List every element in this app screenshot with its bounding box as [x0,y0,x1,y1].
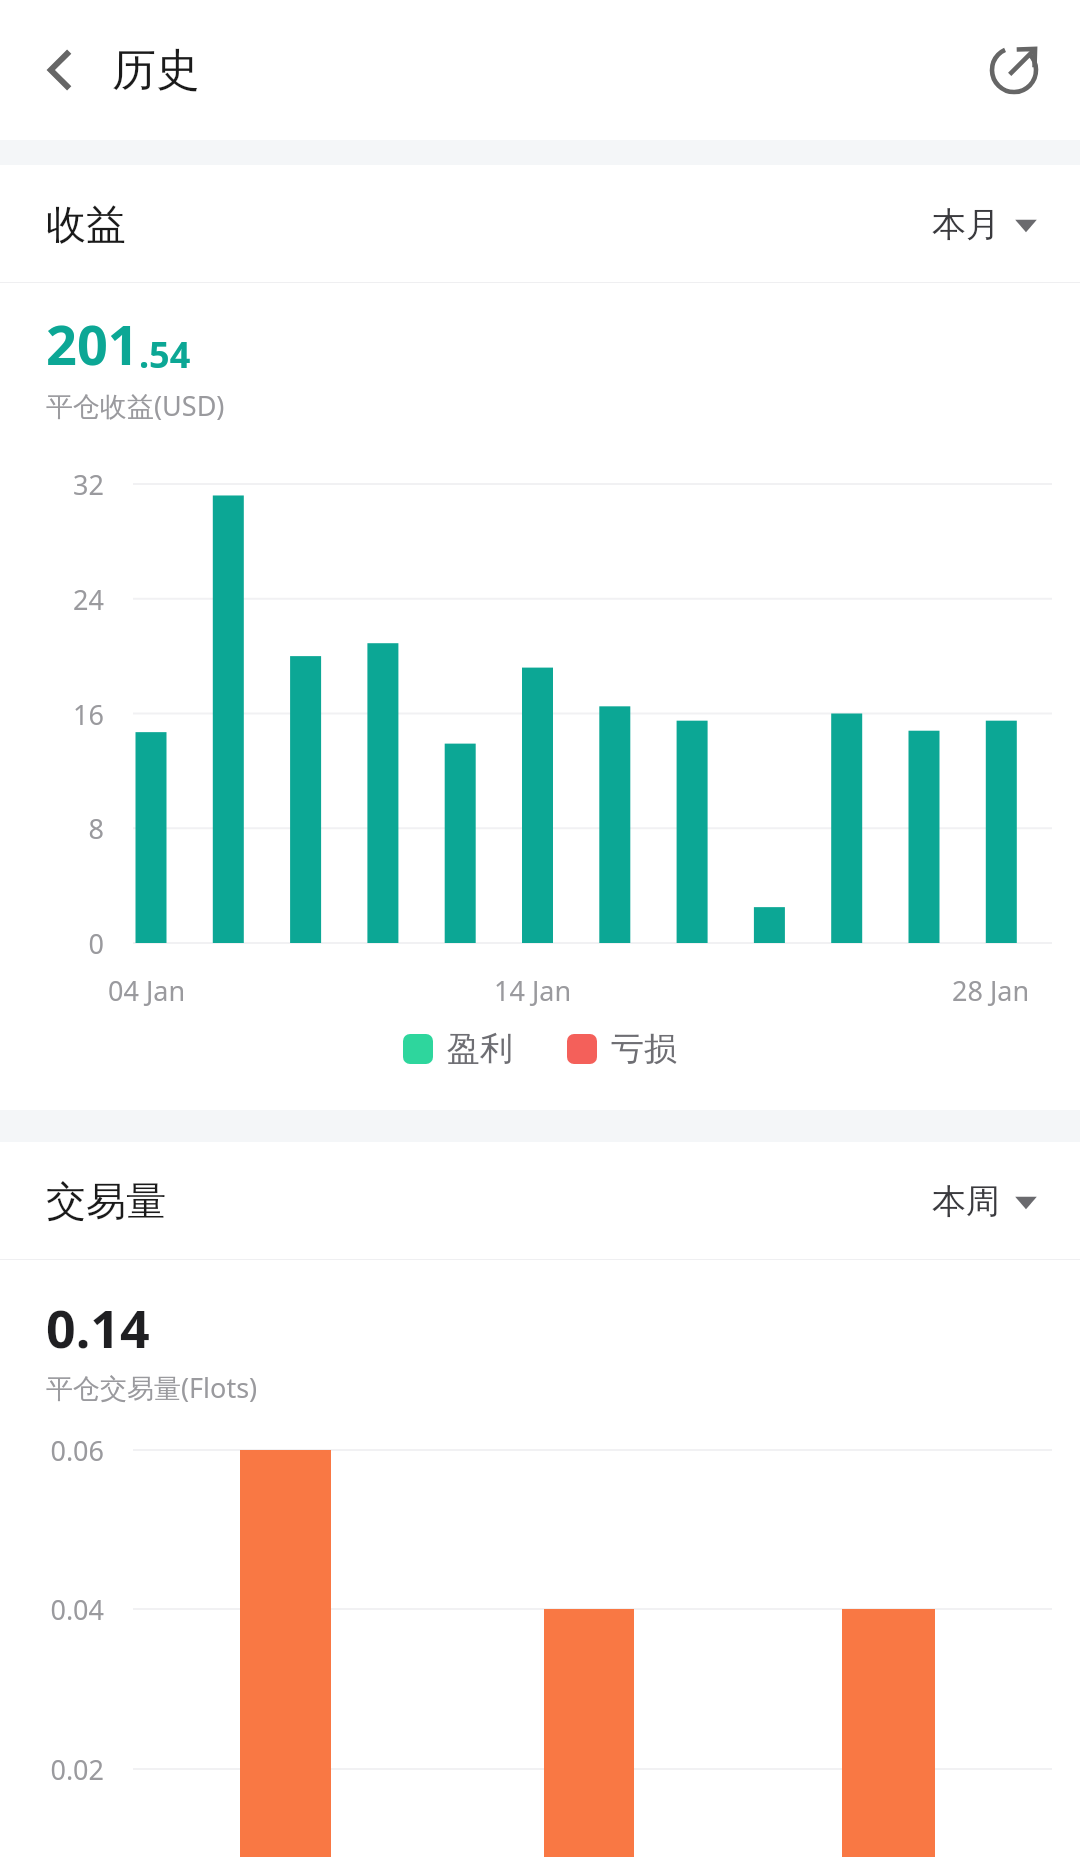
staticText: 历史 [112,43,200,98]
staticText: 8 [8,810,104,847]
staticText: 亏损 [611,1028,677,1070]
staticText: 本周 [932,1180,1000,1223]
staticText: 0.02 [8,1751,104,1788]
staticText: 16 [8,696,104,733]
staticText: 收益 [46,199,126,249]
staticText: 0.06 [8,1432,104,1469]
staticText: 14 Jan [494,972,572,1009]
staticText: 0.14 [46,1292,150,1363]
staticText: 盈利 [447,1028,513,1070]
staticText: 201 [46,307,139,381]
staticText: 28 Jan [952,972,1030,1009]
button[interactable]: 盈利 [399,1024,517,1074]
staticText: 交易量 [46,1176,166,1226]
button[interactable]: Share [966,22,1062,118]
staticText: 24 [8,581,104,618]
button[interactable]: 亏损 [563,1024,681,1074]
staticText: 0.04 [8,1591,104,1628]
staticText: 32 [8,466,104,503]
button[interactable]: Back [16,26,104,114]
staticText: .54 [139,330,191,379]
staticText: 平仓收益(USD) [46,387,225,424]
button[interactable]: 本月 [924,195,1046,254]
button[interactable]: 本周 [924,1172,1046,1231]
staticText: 平仓交易量(Flots) [46,1369,258,1406]
staticText: 0 [8,925,104,962]
staticText: 04 Jan [108,972,186,1009]
staticText: 本月 [932,203,1000,246]
